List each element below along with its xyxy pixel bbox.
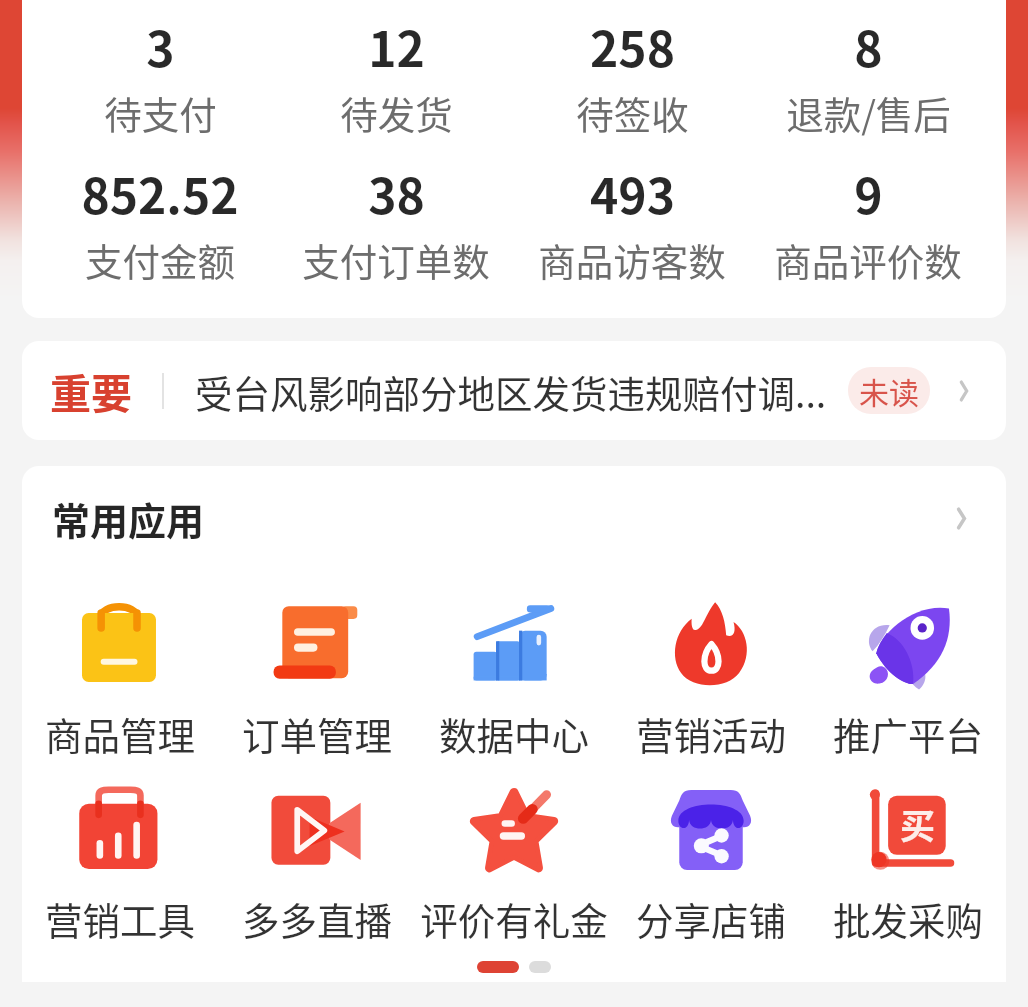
staticText: 852.52 [81,158,239,228]
staticText: 商品访客数 [538,232,726,286]
staticText: 商品评价数 [774,232,962,286]
staticText: 评价有礼金 [420,891,608,943]
staticText: 12 [368,11,425,81]
staticText: 退款/售后 [786,85,951,139]
button[interactable]: 常用应用 [22,466,1006,571]
staticText: 8 [854,11,883,81]
staticText: 未读 [859,369,919,412]
button[interactable]: 分享店铺 [612,759,809,943]
button[interactable]: 852.52 [42,158,278,286]
staticText: 推广平台 [833,706,983,759]
staticText: 多多直播 [242,891,392,943]
button[interactable]: 营销工具 [22,759,218,943]
staticText: 营销工具 [45,891,195,943]
staticText: 买 [900,798,936,849]
button[interactable]: 订单管理 [218,571,415,759]
staticText: 待支付 [104,85,217,139]
button[interactable]: 493 [514,158,750,286]
other: More apps [955,507,968,530]
staticText: 受台风影响部分地区发货违规赔付调... [195,364,840,418]
button[interactable]: 商品管理 [22,571,218,759]
button[interactable]: 12 [278,11,514,139]
button[interactable]: 8 [750,11,986,139]
button[interactable]: 营销活动 [612,571,809,759]
button[interactable]: 推广平台 [809,571,1006,759]
staticText: 493 [590,158,675,228]
button[interactable]: 数据中心 [415,571,612,759]
staticText: 订单管理 [242,706,392,759]
staticText: 营销活动 [636,706,786,759]
staticText: 9 [854,158,883,228]
staticText: 常用应用 [52,491,205,546]
staticText: 商品管理 [45,706,195,759]
staticText: 分享店铺 [636,891,786,943]
button[interactable]: 9 [750,158,986,286]
staticText: 批发采购 [833,891,983,943]
staticText: 数据中心 [439,706,589,759]
button[interactable]: 38 [278,158,514,286]
button[interactable]: 买 [809,759,1006,943]
staticText: 258 [590,11,675,81]
button[interactable]: 评价有礼金 [415,759,612,943]
staticText: 3 [146,11,175,81]
staticText: 重要 [50,361,132,420]
staticText: 待发货 [340,85,453,139]
button[interactable]: 3 [42,11,278,139]
staticText: 支付金额 [85,232,235,286]
button[interactable]: 258 [514,11,750,139]
staticText: 支付订单数 [302,232,490,286]
button[interactable]: 多多直播 [218,759,415,943]
staticText: 38 [368,158,425,228]
staticText: 待签收 [576,85,689,139]
button[interactable]: 重要 [22,341,1006,440]
